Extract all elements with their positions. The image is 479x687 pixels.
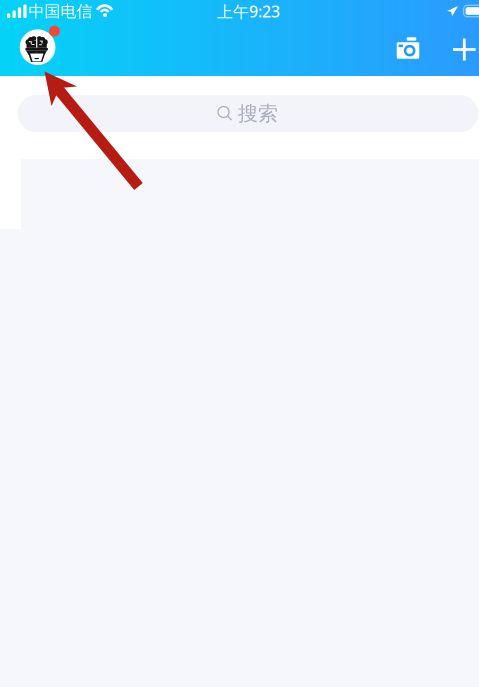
button[interactable]: 搜索: [17, 95, 478, 132]
staticText: 搜索: [238, 101, 278, 126]
button[interactable]: Camera: [391, 31, 425, 65]
staticText: 中国电信: [28, 2, 92, 21]
button[interactable]: Profile: [19, 26, 61, 68]
staticText: 上午9:23: [217, 1, 280, 22]
button[interactable]: Add: [447, 32, 479, 67]
